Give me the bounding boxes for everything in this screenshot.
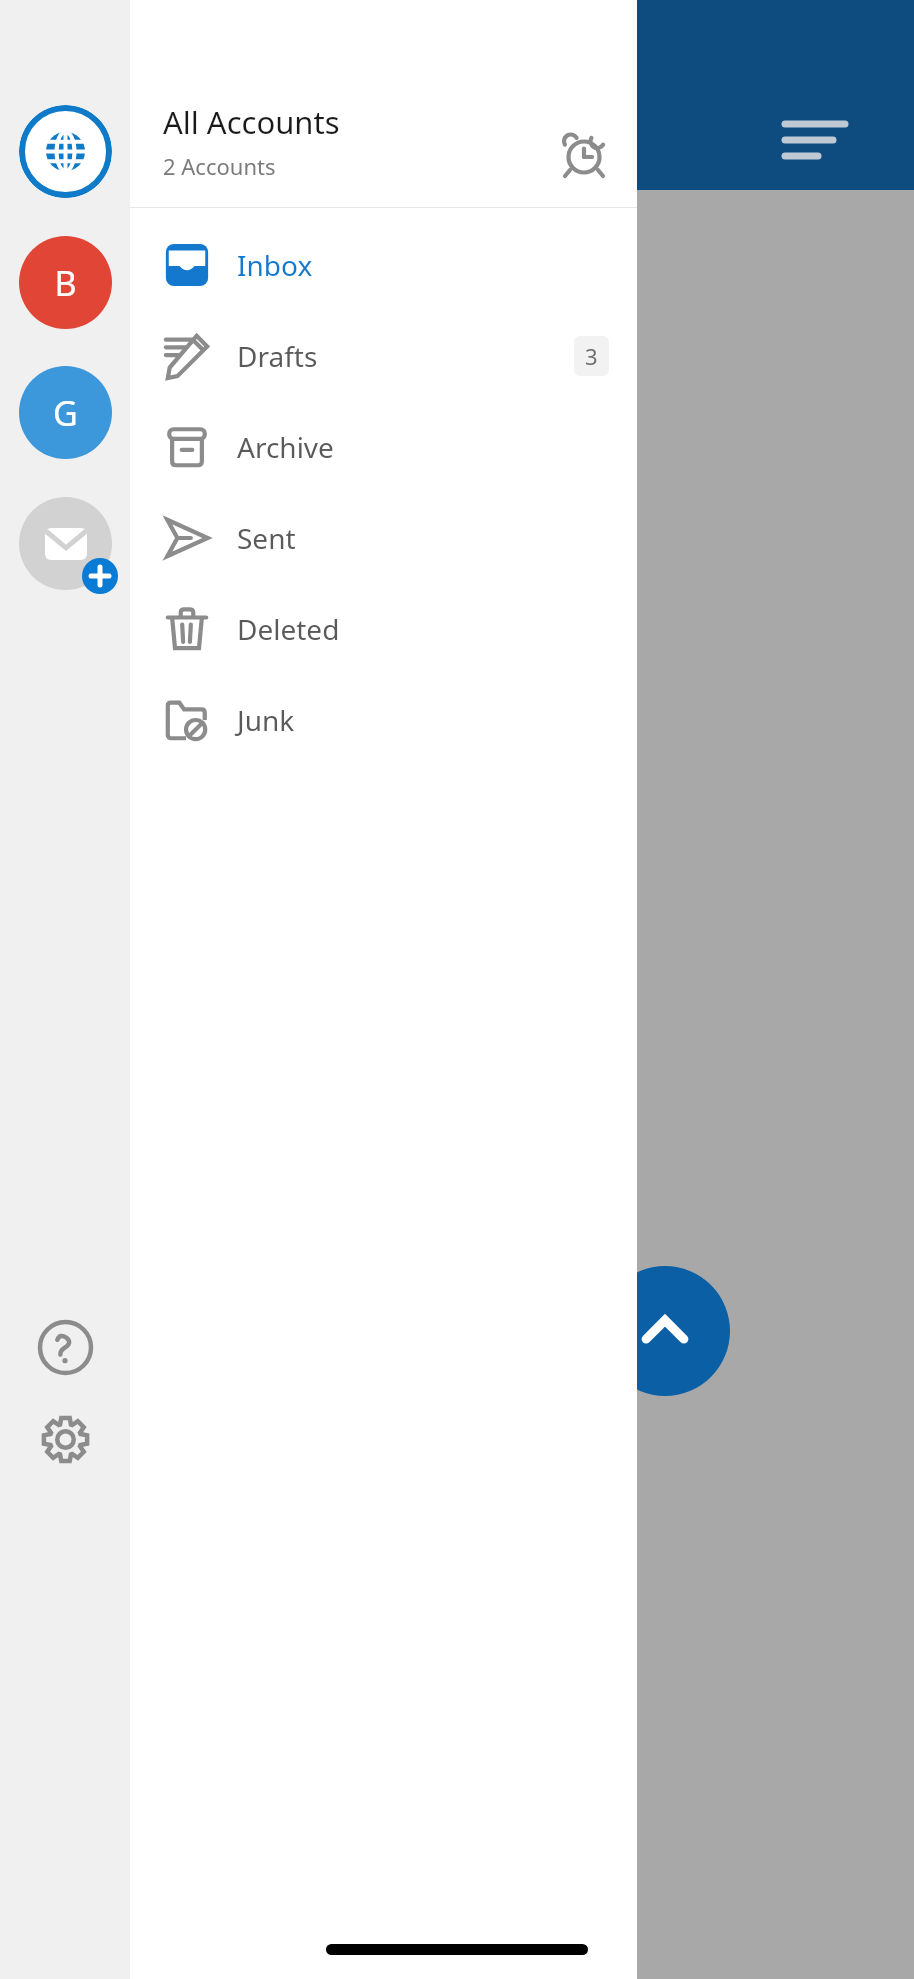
button[interactable]: Drafts [130, 310, 637, 401]
staticText: Sent [237, 519, 296, 557]
button[interactable]: All Accounts [19, 105, 112, 198]
button[interactable]: G [19, 366, 112, 459]
staticText: Inbox [237, 246, 313, 284]
staticText: 2 Accounts [163, 151, 276, 181]
staticText: G [53, 390, 78, 436]
staticText: Archive [237, 428, 334, 466]
button[interactable]: Settings [38, 1412, 93, 1467]
button[interactable]: Sent [130, 492, 637, 583]
button[interactable]: Help [38, 1320, 93, 1375]
button[interactable]: Inbox [130, 219, 637, 310]
button[interactable]: B [19, 236, 112, 329]
button[interactable]: Compose [600, 1266, 730, 1396]
button[interactable]: Deleted [130, 583, 637, 674]
staticText: Drafts [237, 337, 318, 375]
button[interactable]: Archive [130, 401, 637, 492]
staticText: 3 [585, 341, 598, 371]
button[interactable]: Add account [19, 497, 112, 590]
staticText: Junk [237, 701, 295, 739]
button[interactable]: Snooze [555, 125, 613, 183]
staticText: All Accounts [163, 101, 340, 143]
button[interactable]: Junk [130, 674, 637, 765]
staticText: B [54, 260, 77, 306]
staticText: Deleted [237, 610, 340, 648]
